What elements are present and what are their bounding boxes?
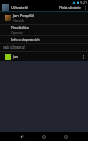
button[interactable]: Navigate up bbox=[2, 4, 9, 11]
button[interactable]: User options bbox=[80, 52, 87, 61]
button[interactable]: Jan Pospíšil bbox=[0, 12, 88, 24]
staticText: Flexibilita bbox=[11, 25, 29, 30]
staticText: Uživatelé bbox=[11, 5, 29, 10]
button[interactable]: Home bbox=[39, 132, 49, 141]
staticText: Info o dopravcích bbox=[11, 37, 40, 42]
button[interactable]: Recent apps bbox=[61, 132, 71, 141]
button[interactable]: Back bbox=[17, 132, 27, 141]
staticText: Přidat uživatele bbox=[59, 6, 81, 10]
staticText: Vlastník bbox=[13, 19, 25, 23]
button[interactable]: Přidat uživatele bbox=[58, 5, 82, 11]
staticText: Jan bbox=[13, 54, 19, 59]
staticText: 9:21 bbox=[80, 0, 87, 4]
button[interactable]: Info o dopravcích bbox=[0, 36, 88, 43]
staticText: Zapnuto bbox=[11, 31, 23, 35]
button[interactable]: Flexibilita bbox=[0, 25, 88, 35]
button[interactable]: More options bbox=[82, 4, 88, 11]
staticText: Jan Pospíšil bbox=[13, 13, 35, 18]
staticText: VAŠI UŽIVATELÉ bbox=[3, 46, 25, 50]
button[interactable]: Jan bbox=[0, 52, 88, 61]
